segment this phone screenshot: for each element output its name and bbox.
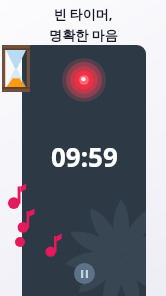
staticText: 빈 타이머,: [53, 5, 113, 23]
button[interactable]: Pause timer: [74, 263, 95, 284]
staticText: 명확한 마음: [49, 26, 118, 44]
staticText: 09:59: [51, 139, 118, 174]
